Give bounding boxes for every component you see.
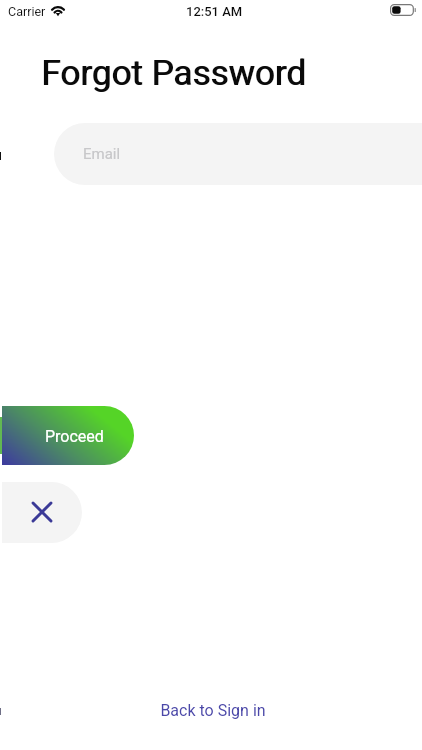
- staticText: 12:51 AM: [186, 4, 243, 19]
- staticText: Proceed: [45, 427, 104, 446]
- staticText: Forgot Password: [42, 53, 307, 94]
- other: Battery: [390, 4, 416, 16]
- button[interactable]: Email: [54, 123, 422, 185]
- button[interactable]: Back to Sign in: [2, 699, 422, 721]
- staticText: Back to Sign in: [160, 701, 266, 720]
- button[interactable]: Proceed: [2, 406, 134, 465]
- staticText: Email: [83, 145, 121, 163]
- staticText: Forgot Password: [41, 53, 306, 94]
- button[interactable]: Close: [2, 482, 82, 543]
- staticText: Carrier: [8, 4, 46, 19]
